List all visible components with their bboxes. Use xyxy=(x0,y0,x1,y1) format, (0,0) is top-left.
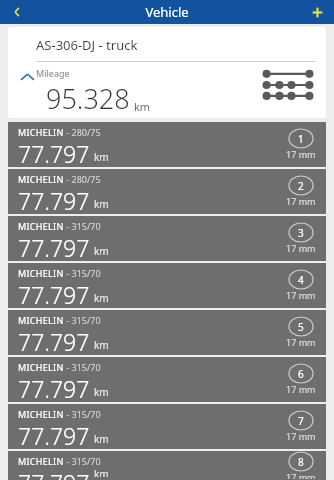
staticText: 77.797 xyxy=(18,420,90,449)
staticText: MICHELIN xyxy=(18,267,64,279)
button[interactable]: MICHELIN xyxy=(8,263,326,308)
staticText: - 280/75 xyxy=(64,173,101,185)
button[interactable]: MICHELIN xyxy=(8,169,326,214)
staticText: km xyxy=(134,99,151,114)
staticText: 17 mm xyxy=(286,336,316,348)
staticText: 6 xyxy=(298,367,304,381)
staticText: - 315/70 xyxy=(64,408,101,420)
staticText: km xyxy=(94,244,109,258)
staticText: 8 xyxy=(298,455,304,469)
staticText: MICHELIN xyxy=(18,455,64,467)
staticText: 17 mm xyxy=(286,289,316,301)
staticText: 77.797 xyxy=(18,279,90,308)
staticText: 5 xyxy=(298,320,304,334)
staticText: 2 xyxy=(298,179,304,193)
staticText: - 315/70 xyxy=(64,267,101,279)
staticText: km xyxy=(94,150,109,164)
staticText: 17 mm xyxy=(286,148,316,160)
staticText: km xyxy=(94,291,109,305)
staticText: - 315/70 xyxy=(64,220,101,232)
staticText: 77.797 xyxy=(18,185,90,214)
staticText: 17 mm xyxy=(286,383,316,395)
staticText: Vehicle xyxy=(145,3,189,21)
staticText: 77.797 xyxy=(18,467,90,480)
staticText: MICHELIN xyxy=(18,220,64,232)
staticText: 17 mm xyxy=(286,242,316,254)
button[interactable]: MICHELIN xyxy=(8,357,326,402)
staticText: - 280/75 xyxy=(64,126,101,138)
staticText: - 315/70 xyxy=(64,314,101,326)
staticText: km xyxy=(94,197,109,211)
staticText: km xyxy=(94,432,109,446)
staticText: MICHELIN xyxy=(18,126,64,138)
staticText: 77.797 xyxy=(18,326,90,355)
staticText: 17 mm xyxy=(286,430,316,442)
button[interactable]: MICHELIN xyxy=(8,122,326,167)
staticText: MICHELIN xyxy=(18,173,64,185)
button[interactable]: Back xyxy=(0,0,34,24)
staticText: 77.797 xyxy=(18,373,90,402)
staticText: MICHELIN xyxy=(18,314,64,326)
staticText: MICHELIN xyxy=(18,408,64,420)
button[interactable]: Axles xyxy=(262,68,314,102)
button[interactable]: Collapse xyxy=(18,68,36,86)
button[interactable]: MICHELIN xyxy=(8,216,326,261)
staticText: 1 xyxy=(298,132,304,146)
staticText: 17 mm xyxy=(286,471,316,479)
staticText: km xyxy=(94,385,109,399)
staticText: 95.328 xyxy=(46,80,130,117)
staticText: 7 xyxy=(298,414,304,428)
staticText: 4 xyxy=(298,273,304,287)
button[interactable]: MICHELIN xyxy=(8,404,326,449)
button[interactable]: MICHELIN xyxy=(8,451,326,480)
staticText: 17 mm xyxy=(286,195,316,207)
staticText: 77.797 xyxy=(18,232,90,261)
staticText: 3 xyxy=(298,226,304,240)
button[interactable]: MICHELIN xyxy=(8,310,326,355)
staticText: km xyxy=(94,338,109,352)
staticText: - 315/70 xyxy=(64,361,101,373)
staticText: AS-306-DJ - truck xyxy=(36,36,138,54)
staticText: km xyxy=(94,467,109,477)
staticText: 77.797 xyxy=(18,138,90,167)
button[interactable]: Add xyxy=(300,0,334,24)
button[interactable]: AS-306-DJ - truck xyxy=(8,27,326,118)
staticText: - 315/70 xyxy=(64,455,101,467)
staticText: MICHELIN xyxy=(18,361,64,373)
staticText: Mileage xyxy=(36,67,70,79)
